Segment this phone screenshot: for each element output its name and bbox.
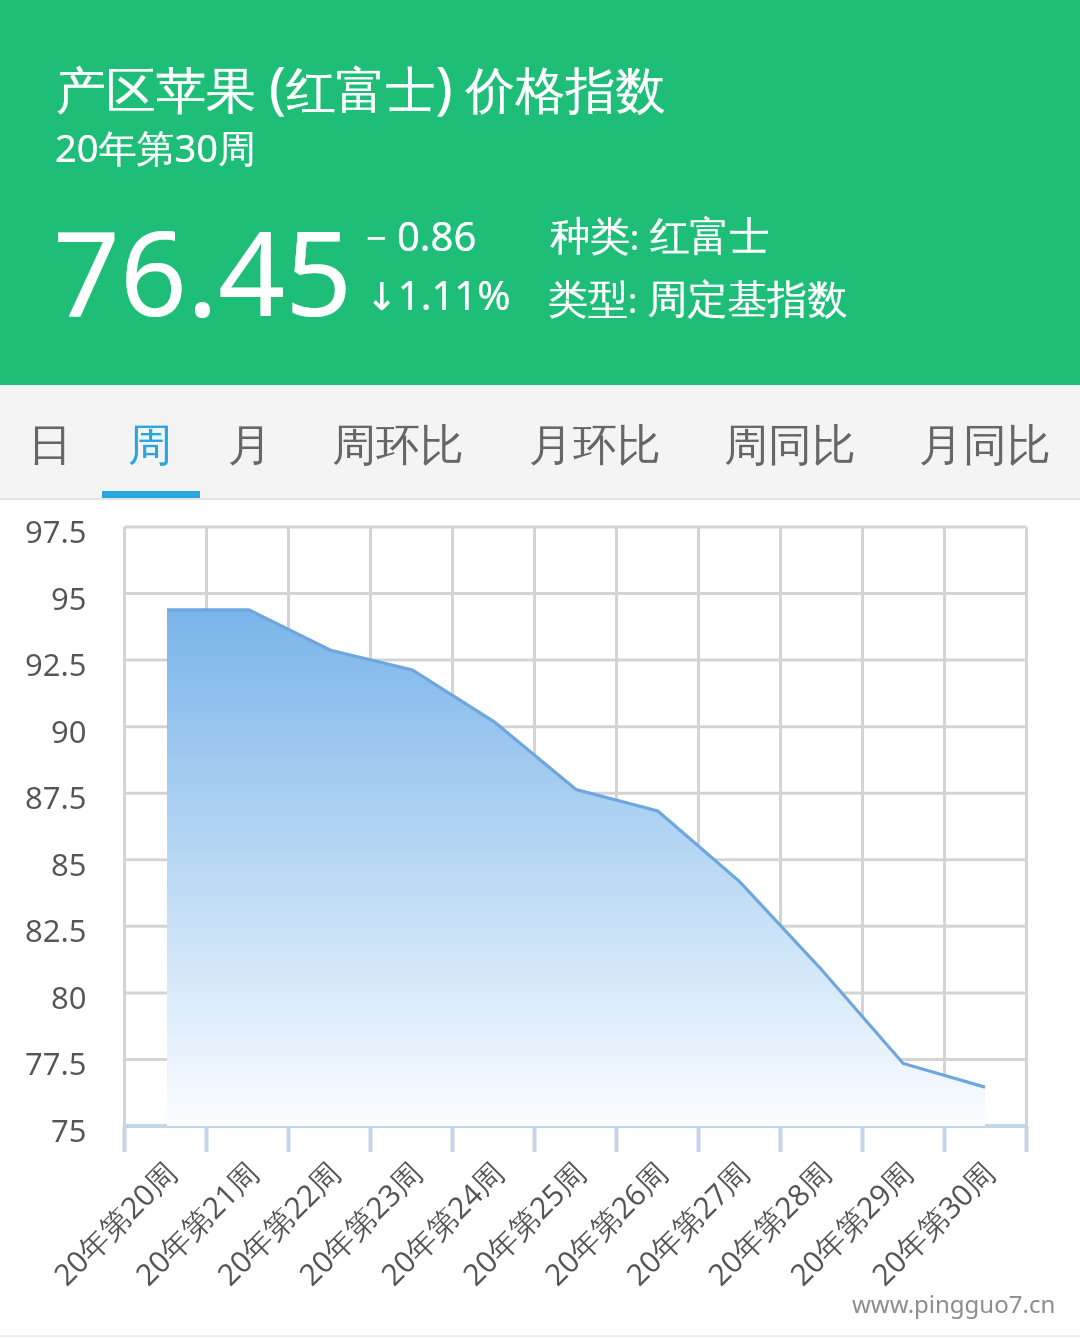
staticText: 月 xyxy=(228,418,272,473)
staticText: 月环比 xyxy=(529,418,661,473)
staticText: 20年第30周 xyxy=(55,121,256,173)
staticText: 76.45 xyxy=(53,191,353,350)
staticText: 种类: 红富士 xyxy=(550,207,770,262)
button[interactable]: 月 xyxy=(208,385,292,498)
staticText: 周环比 xyxy=(332,418,464,473)
staticText: 周同比 xyxy=(724,418,856,473)
staticText: 产区苹果 (红富士) 价格指数 xyxy=(56,48,666,124)
staticText: 类型: 周定基指数 xyxy=(548,270,848,325)
button[interactable]: 月环比 xyxy=(509,385,681,498)
staticText: 月同比 xyxy=(919,418,1051,473)
staticText: 日 xyxy=(28,418,72,473)
staticText: 周 xyxy=(128,418,172,473)
button[interactable]: 周同比 xyxy=(704,385,876,498)
button[interactable]: 月同比 xyxy=(899,385,1071,498)
button[interactable]: 日 xyxy=(8,385,92,498)
button[interactable]: 周 xyxy=(108,385,192,498)
button[interactable]: 周环比 xyxy=(312,385,484,498)
staticText: ↓1.11% xyxy=(366,267,511,321)
staticText: − 0.86 xyxy=(366,208,477,262)
